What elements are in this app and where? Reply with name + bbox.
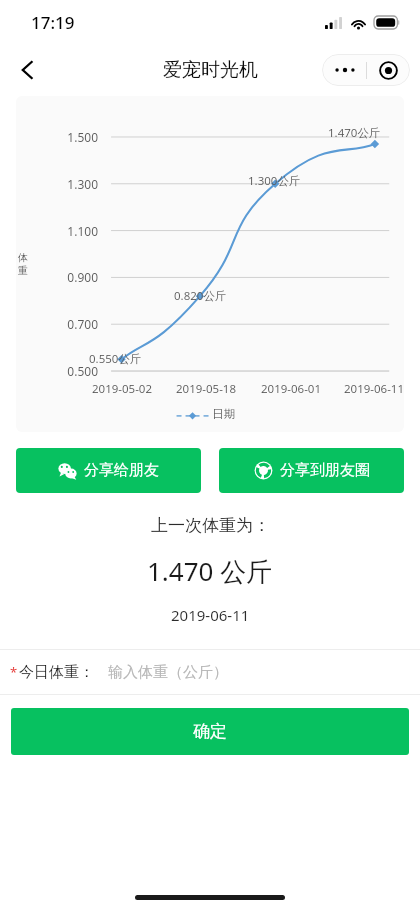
- staticText: 1.470公斤: [328, 125, 381, 141]
- staticText: 0.820公斤: [174, 288, 227, 304]
- button[interactable]: 分享到朋友圈: [219, 448, 404, 493]
- staticText: 2019-06-01: [251, 381, 331, 397]
- staticText: *: [10, 663, 18, 681]
- staticText: 分享到朋友圈: [280, 461, 370, 480]
- staticText: 1.470 公斤: [147, 553, 273, 589]
- staticText: 0.900: [30, 269, 98, 285]
- button[interactable]: 更多: [324, 54, 366, 86]
- staticText: 1.100: [30, 223, 98, 239]
- staticText: 17:19: [31, 11, 75, 34]
- button[interactable]: 分享给朋友: [16, 448, 201, 493]
- button[interactable]: 返回: [6, 48, 50, 92]
- staticText: 2019-06-11: [334, 381, 404, 397]
- staticText: 2019-06-11: [171, 605, 250, 625]
- staticText: 爱宠时光机: [163, 58, 258, 82]
- staticText: 分享给朋友: [84, 461, 159, 480]
- staticText: 日期: [212, 407, 235, 421]
- staticText: 重: [18, 264, 28, 277]
- staticText: 上一次体重为：: [151, 515, 270, 536]
- staticText: 2019-05-02: [82, 381, 162, 397]
- staticText: 今日体重：: [19, 663, 94, 682]
- staticText: 0.700: [30, 316, 98, 332]
- button[interactable]: 关闭: [367, 54, 409, 86]
- staticText: 1.500: [30, 129, 98, 145]
- button[interactable]: 确定: [11, 708, 409, 755]
- staticText: 2019-05-18: [166, 381, 246, 397]
- staticText: 1.300: [30, 176, 98, 192]
- staticText: 0.550公斤: [89, 351, 142, 367]
- staticText: 体: [18, 251, 28, 264]
- button[interactable]: *: [0, 650, 420, 694]
- staticText: 确定: [193, 721, 227, 742]
- staticText: 输入体重（公斤）: [108, 663, 228, 682]
- staticText: 1.300公斤: [248, 173, 301, 189]
- staticText: 0.500: [30, 363, 98, 379]
